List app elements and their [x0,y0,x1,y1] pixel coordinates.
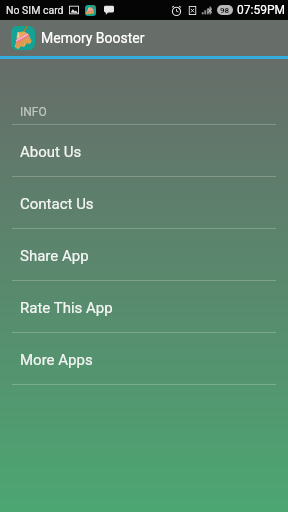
staticText: Share App [20,247,89,265]
staticText: INFO [20,105,47,119]
staticText: More Apps [20,351,93,369]
button[interactable]: More Apps [0,333,288,384]
staticText: Rate This App [20,299,113,317]
button[interactable]: About Us [0,125,288,176]
staticText: Contact Us [20,195,94,213]
staticText: Memory Booster [41,30,145,46]
button[interactable]: Rate This App [0,281,288,332]
staticText: 07:59PM [237,3,285,17]
button[interactable]: Share App [0,229,288,280]
other: App icon [11,26,35,50]
button[interactable]: Contact Us [0,177,288,228]
staticText: About Us [20,143,82,161]
staticText: No SIM card [6,4,64,16]
staticText: 98 [220,6,230,15]
